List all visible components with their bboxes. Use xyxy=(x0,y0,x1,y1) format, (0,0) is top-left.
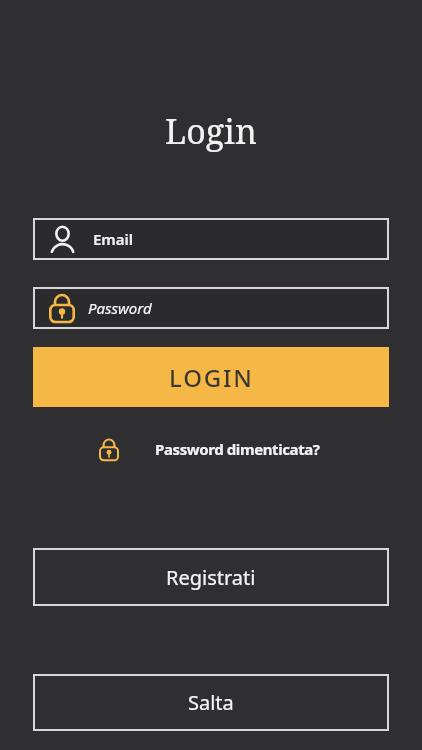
button[interactable]: Salta xyxy=(33,674,389,731)
staticText: Password xyxy=(88,298,152,318)
button[interactable]: Password xyxy=(33,287,389,329)
staticText: Email xyxy=(93,229,134,249)
staticText: Registrati xyxy=(166,564,256,591)
button[interactable]: Email xyxy=(33,218,389,260)
button[interactable]: Password dimenticata? xyxy=(0,427,420,471)
button[interactable]: LOGIN xyxy=(33,347,389,407)
staticText: Password dimenticata? xyxy=(155,439,320,459)
staticText: Salta xyxy=(188,689,234,716)
button[interactable]: Registrati xyxy=(33,548,389,606)
staticText: LOGIN xyxy=(169,361,254,394)
staticText: Login xyxy=(165,108,257,154)
